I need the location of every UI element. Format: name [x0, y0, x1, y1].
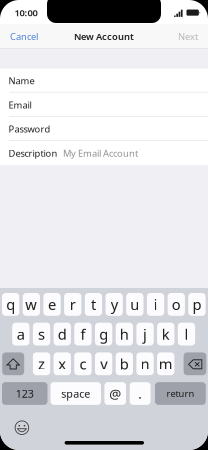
button[interactable]: Description [0, 141, 208, 165]
staticText: v [100, 354, 107, 374]
button[interactable]: z [33, 352, 50, 375]
staticText: n [141, 354, 150, 374]
button[interactable]: o [168, 293, 185, 316]
staticText: u [130, 295, 139, 314]
button[interactable]: return [155, 382, 206, 405]
button[interactable]: Next [170, 27, 206, 45]
staticText: New Account [74, 30, 134, 42]
staticText: x [58, 354, 66, 374]
button[interactable]: space [50, 382, 101, 405]
button[interactable]: v [95, 352, 112, 375]
button[interactable]: y [105, 293, 123, 316]
button[interactable]: l [178, 323, 195, 345]
staticText: k [162, 324, 170, 344]
button[interactable]: x [54, 352, 71, 375]
button[interactable]: f [74, 323, 92, 345]
staticText: j [143, 324, 147, 344]
staticText: l [184, 324, 188, 344]
button[interactable]: c [74, 352, 92, 375]
button[interactable]: u [126, 293, 143, 316]
staticText: . [138, 385, 142, 402]
button[interactable]: m [157, 352, 174, 375]
staticText: w [25, 295, 37, 314]
staticText: p [192, 295, 201, 314]
button[interactable]: @ [104, 382, 126, 405]
staticText: y [111, 295, 118, 314]
button[interactable]: 123 [2, 382, 47, 405]
staticText: m [159, 354, 173, 374]
button[interactable]: g [95, 323, 112, 345]
staticText: Next [178, 30, 198, 42]
button[interactable]: q [2, 293, 19, 316]
staticText: a [17, 324, 25, 344]
staticText: Description [8, 147, 57, 159]
button[interactable]: r [64, 293, 81, 316]
button[interactable]: j [136, 323, 154, 345]
staticText: z [38, 354, 45, 374]
button[interactable]: Emoji [13, 419, 31, 437]
button[interactable]: d [54, 323, 71, 345]
staticText: Cancel [10, 30, 38, 42]
button[interactable]: a [12, 323, 29, 345]
staticText: Email [8, 99, 31, 111]
staticText: s [38, 324, 45, 344]
staticText: c [79, 354, 86, 374]
staticText: e [48, 295, 56, 314]
button[interactable]: . [130, 382, 151, 405]
button[interactable]: h [116, 323, 133, 345]
staticText: @ [109, 385, 121, 402]
button[interactable]: p [188, 293, 206, 316]
button[interactable]: Name [0, 68, 208, 93]
staticText: t [91, 295, 96, 314]
button[interactable]: Password [0, 117, 208, 141]
button[interactable]: k [157, 323, 174, 345]
button[interactable]: Cancel [3, 27, 45, 45]
staticText: h [120, 324, 129, 344]
button[interactable]: t [85, 293, 102, 316]
button[interactable]: Delete [184, 352, 206, 375]
button[interactable]: w [23, 293, 40, 316]
staticText: space [61, 386, 90, 401]
staticText: Name [8, 74, 34, 87]
staticText: My Email Account [63, 147, 138, 159]
button[interactable]: n [136, 352, 154, 375]
button[interactable]: e [43, 293, 61, 316]
button[interactable]: b [116, 352, 133, 375]
button[interactable]: s [33, 323, 50, 345]
staticText: 10:00 [14, 6, 37, 19]
staticText: d [58, 324, 67, 344]
staticText: r [70, 295, 76, 314]
button[interactable]: Email [0, 93, 208, 117]
staticText: g [99, 324, 108, 344]
staticText: f [80, 324, 85, 344]
button[interactable]: Shift [2, 352, 24, 375]
staticText: b [120, 354, 129, 374]
staticText: Password [8, 123, 50, 135]
staticText: 123 [16, 386, 34, 401]
button[interactable]: i [147, 293, 164, 316]
staticText: return [166, 387, 194, 400]
staticText: o [172, 295, 181, 314]
staticText: i [154, 295, 158, 314]
staticText: q [6, 295, 15, 314]
